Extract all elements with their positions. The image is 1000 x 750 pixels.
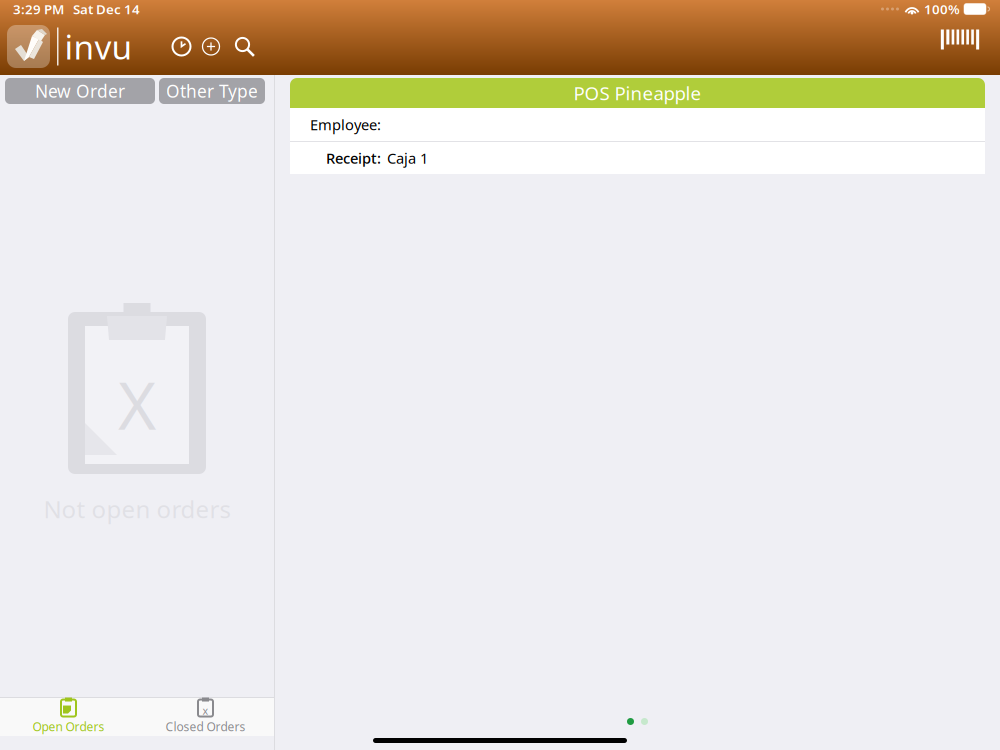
staticText: invu [64,24,132,69]
staticText: 3:29 PM [13,0,64,18]
staticText: New Order [35,79,125,102]
button[interactable]: New [202,38,219,55]
staticText: Caja 1 [387,148,428,168]
button[interactable]: New Order [5,78,155,104]
staticText: Sat Dec 14 [73,0,140,18]
button[interactable]: Search [234,36,254,56]
staticText: Closed Orders [165,718,245,734]
button[interactable]: Scan barcode [941,27,979,65]
button[interactable]: x [137,698,274,736]
staticText: X [118,361,156,448]
staticText: Open Orders [32,718,104,734]
button[interactable]: Other Type [159,78,265,104]
button[interactable]: invu home [7,25,50,68]
staticText: POS Pineapple [573,81,701,105]
staticText: Employee: [310,115,381,134]
button[interactable]: Open Orders [0,698,137,736]
staticText: 100% [924,0,960,18]
staticText: Not open orders [43,493,230,525]
staticText: Other Type [166,79,258,102]
button[interactable]: Recent orders [171,36,191,56]
staticText: x [202,703,208,718]
staticText: Receipt: [326,148,381,168]
